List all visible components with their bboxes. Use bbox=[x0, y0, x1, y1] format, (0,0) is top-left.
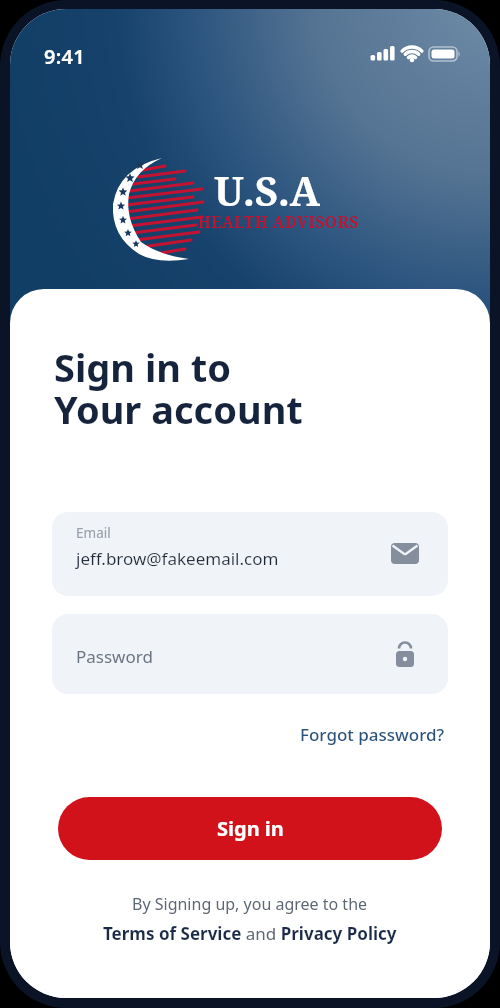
staticText: Password bbox=[76, 645, 153, 668]
button[interactable]: Sign in bbox=[58, 797, 442, 860]
button[interactable]: Password bbox=[52, 614, 448, 694]
staticText: jeff.brow@fakeemail.com bbox=[76, 547, 279, 570]
staticText: 9:41 bbox=[44, 43, 86, 70]
staticText: U.S.A bbox=[214, 163, 320, 217]
button[interactable]: Terms of Service and Privacy Policy bbox=[10, 922, 490, 945]
staticText: By Signing up, you agree to the bbox=[132, 893, 368, 915]
button[interactable]: Forgot password? bbox=[10, 723, 445, 746]
staticText: Sign in bbox=[217, 815, 284, 842]
staticText: Email bbox=[76, 524, 111, 542]
staticText: Terms of Service and Privacy Policy bbox=[103, 922, 397, 945]
staticText: Forgot password? bbox=[300, 723, 445, 746]
button[interactable]: Email bbox=[52, 512, 448, 596]
staticText: Sign in to Your account bbox=[54, 341, 303, 435]
staticText: HEALTH ADVISORS bbox=[198, 211, 359, 232]
